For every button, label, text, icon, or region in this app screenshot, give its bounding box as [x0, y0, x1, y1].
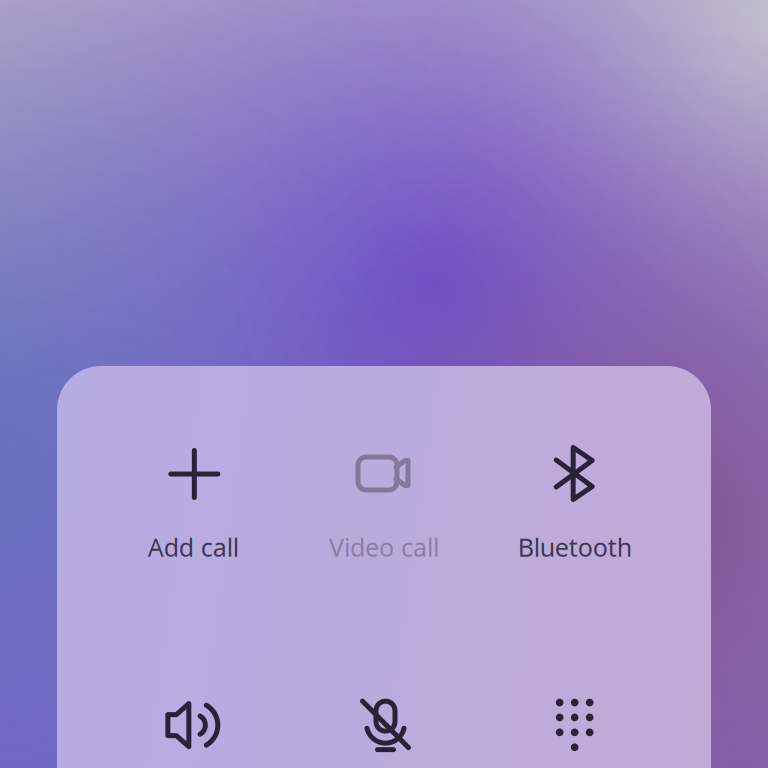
button[interactable]: Video call — [289, 441, 479, 564]
button[interactable]: Keypad — [479, 692, 670, 756]
button[interactable]: Bluetooth — [479, 441, 670, 564]
button[interactable]: Add call — [98, 441, 289, 564]
button[interactable]: Mute — [289, 692, 479, 756]
staticText: Video call — [329, 530, 439, 564]
staticText: Add call — [148, 530, 239, 564]
staticText: Bluetooth — [518, 530, 632, 564]
button[interactable]: Speaker — [98, 692, 289, 756]
